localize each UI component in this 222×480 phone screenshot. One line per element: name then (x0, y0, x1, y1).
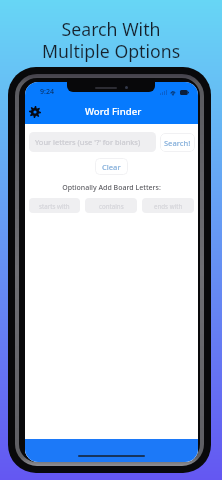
staticText: Word Finder (85, 105, 142, 118)
staticText: ends with (154, 202, 183, 210)
staticText: Optionally Add Board Letters: (25, 183, 198, 193)
staticText: starts with (39, 202, 70, 210)
staticText: contains (99, 202, 124, 210)
staticText: Your letters (use '?' for blanks) (35, 137, 141, 147)
button[interactable]: starts with (29, 198, 80, 213)
button[interactable]: Your letters (use '?' for blanks) (29, 132, 156, 152)
button[interactable]: Search! (160, 133, 195, 152)
button[interactable]: contains (85, 198, 137, 213)
staticText: Search With Multiple Options (0, 17, 222, 63)
staticText: Clear (102, 162, 121, 172)
button[interactable]: ends with (142, 198, 194, 213)
button[interactable]: Clear (95, 158, 128, 175)
staticText: 9:24 (40, 87, 54, 97)
staticText: Search! (164, 138, 191, 148)
button[interactable]: Settings (26, 103, 44, 121)
